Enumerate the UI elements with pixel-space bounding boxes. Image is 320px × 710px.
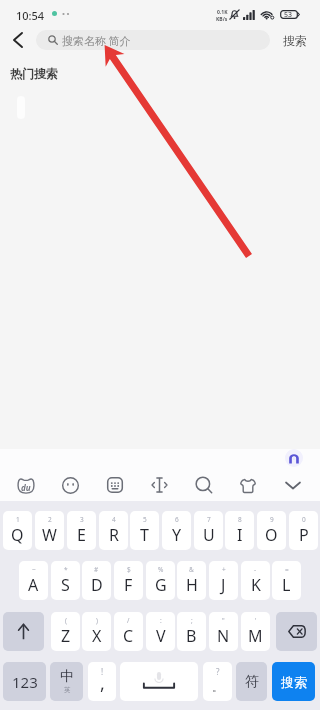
staticText: 3 <box>80 515 84 524</box>
button[interactable]: 7 <box>194 511 223 550</box>
button[interactable]: ) <box>82 612 111 651</box>
button[interactable]: $ <box>114 561 143 600</box>
button[interactable]: ~ <box>19 561 48 600</box>
staticText: 6 <box>175 515 179 524</box>
staticText: D <box>91 574 103 596</box>
staticText: ! <box>101 666 104 677</box>
button[interactable]: 搜索 <box>272 662 315 701</box>
button[interactable]: Search <box>188 469 220 501</box>
staticText: 。 <box>212 680 223 694</box>
button[interactable]: - <box>241 561 270 600</box>
staticText: I <box>237 524 243 546</box>
staticText: ' <box>255 616 257 625</box>
staticText: # <box>94 565 99 574</box>
button[interactable]: 6 <box>162 511 191 550</box>
button[interactable]: 0 <box>289 511 318 550</box>
staticText: du <box>21 482 31 493</box>
button[interactable]: Baidu input <box>10 469 42 501</box>
button[interactable]: 搜索 <box>276 26 314 54</box>
button[interactable]: = <box>272 561 301 600</box>
button[interactable]: Shift <box>3 612 44 651</box>
button[interactable]: 搜索名称 简介 <box>36 30 270 50</box>
button[interactable]: " <box>209 612 238 651</box>
staticText: / <box>127 616 130 625</box>
button[interactable]: 9 <box>257 511 286 550</box>
staticText: 8 <box>238 515 242 524</box>
staticText: U <box>203 524 215 546</box>
button[interactable]: Space <box>120 662 198 701</box>
button[interactable]: 4 <box>99 511 128 550</box>
staticText: 5 <box>143 515 147 524</box>
button[interactable]: & <box>177 561 206 600</box>
staticText: N <box>217 625 230 647</box>
button[interactable]: Back <box>4 26 32 54</box>
button[interactable]: ; <box>177 612 206 651</box>
staticText: 符 <box>245 673 259 691</box>
button[interactable]: 1 <box>3 511 32 550</box>
staticText: " <box>222 616 225 625</box>
button[interactable]: ! <box>88 662 116 701</box>
button[interactable]: ' <box>241 612 270 651</box>
staticText: 0.1K <box>217 9 228 16</box>
staticText: 搜索名称 简介 <box>62 33 131 48</box>
staticText: 1 <box>16 515 20 524</box>
staticText: S <box>61 574 70 596</box>
button[interactable]: Skins <box>232 469 264 501</box>
staticText: V <box>156 625 166 647</box>
staticText: 53 <box>284 10 293 19</box>
staticText: ( <box>65 616 67 625</box>
staticText: 0 <box>302 515 306 524</box>
button[interactable]: * <box>51 561 80 600</box>
staticText: - <box>254 565 257 574</box>
button[interactable]: Backspace <box>276 612 317 651</box>
staticText: E <box>77 524 86 546</box>
staticText: K <box>251 574 261 596</box>
button[interactable]: 2 <box>35 511 64 550</box>
staticText: Z <box>61 625 71 647</box>
button[interactable]: ( <box>51 612 80 651</box>
staticText: B <box>186 625 197 647</box>
staticText: 英 <box>64 686 71 694</box>
button[interactable]: Hide keyboard <box>277 469 309 501</box>
staticText: T <box>140 524 149 546</box>
button[interactable]: Symbols <box>236 662 267 701</box>
staticText: 搜索 <box>283 33 307 48</box>
staticText: F <box>124 574 133 596</box>
staticText: 中 <box>60 668 74 686</box>
staticText: W <box>42 524 57 546</box>
button[interactable]: + <box>209 561 238 600</box>
button[interactable]: ? <box>203 662 232 701</box>
button[interactable]: 5 <box>130 511 159 550</box>
button[interactable]: % <box>146 561 175 600</box>
staticText: 4 <box>112 515 116 524</box>
button[interactable]: Numbers <box>3 662 46 701</box>
staticText: Y <box>172 524 182 546</box>
staticText: H <box>186 574 198 596</box>
staticText: 7 <box>207 515 211 524</box>
staticText: C <box>123 625 134 647</box>
button[interactable]: 3 <box>67 511 96 550</box>
button[interactable]: AI assistant <box>285 449 303 467</box>
button[interactable]: Keyboard layout <box>99 469 131 501</box>
button[interactable]: # <box>82 561 111 600</box>
staticText: L <box>282 574 291 596</box>
button[interactable]: / <box>114 612 143 651</box>
button[interactable]: : <box>146 612 175 651</box>
staticText: O <box>265 524 278 546</box>
staticText: 搜索 <box>281 674 307 690</box>
button[interactable]: Chinese / English <box>50 662 83 701</box>
staticText: KB/s <box>216 16 228 23</box>
staticText: M <box>248 625 263 647</box>
staticText: * <box>64 565 68 574</box>
staticText: 123 <box>12 672 38 692</box>
staticText: X <box>92 625 102 647</box>
button[interactable]: 8 <box>225 511 254 550</box>
staticText: 热门搜索 <box>10 66 58 81</box>
button[interactable]: Move cursor <box>143 469 175 501</box>
staticText: = <box>285 565 289 574</box>
button[interactable]: Emoji <box>54 469 86 501</box>
staticText: % <box>158 565 164 574</box>
staticText: R <box>109 524 119 546</box>
staticText: & <box>189 565 194 574</box>
